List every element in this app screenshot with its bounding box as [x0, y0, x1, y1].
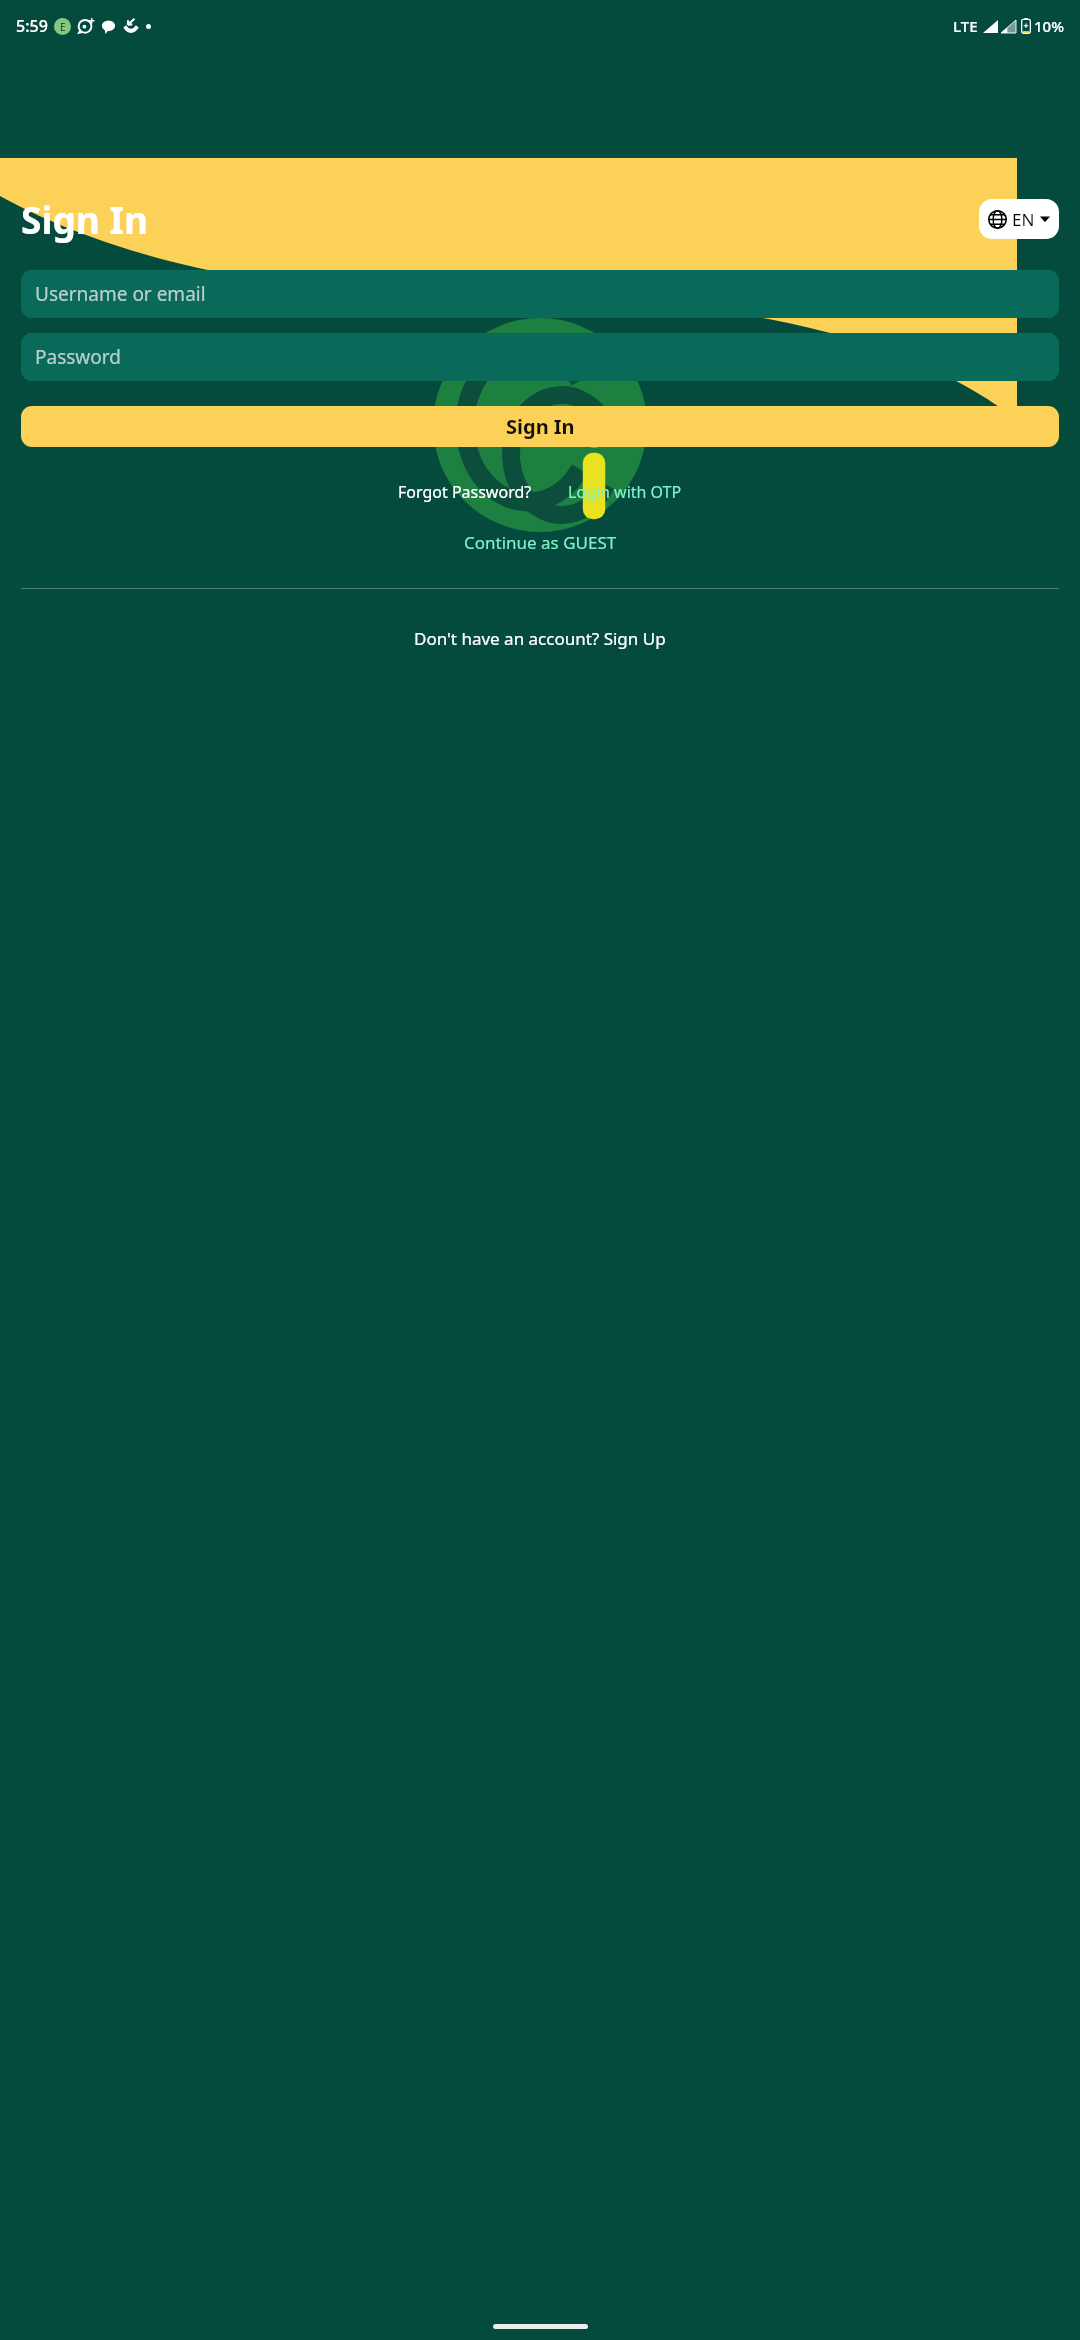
staticText: Sign In	[506, 413, 575, 440]
staticText: LTE	[953, 16, 978, 36]
staticText: Username or email	[35, 281, 206, 307]
staticText: 10%	[1034, 16, 1064, 36]
button[interactable]: Don't have an account? Sign Up	[404, 621, 676, 656]
button[interactable]: Login with OTP	[560, 475, 690, 509]
staticText: Login with OTP	[568, 481, 682, 503]
staticText: 5:59	[16, 15, 48, 37]
staticText: E	[60, 20, 66, 34]
staticText: Password	[35, 344, 121, 370]
staticText: Sign In	[21, 194, 148, 244]
button[interactable]: Forgot Password?	[390, 475, 540, 509]
button[interactable]: Sign In	[21, 406, 1059, 447]
button[interactable]: Username or email	[21, 270, 1059, 318]
staticText: EN	[1012, 208, 1035, 231]
staticText: Forgot Password?	[398, 481, 532, 503]
staticText: Continue as GUEST	[464, 531, 617, 554]
staticText: Don't have an account? Sign Up	[414, 627, 666, 650]
button[interactable]: Change language, English selected	[979, 199, 1059, 239]
button[interactable]: Continue as GUEST	[454, 525, 627, 560]
button[interactable]: Password	[21, 333, 1059, 381]
